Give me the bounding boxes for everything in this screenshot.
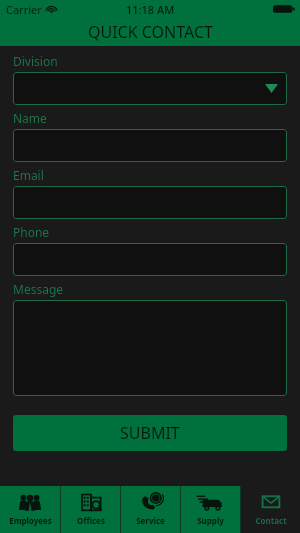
staticText: Division xyxy=(13,53,58,69)
button[interactable] xyxy=(13,186,287,219)
button[interactable]: Offices xyxy=(61,486,120,533)
staticText: Supply xyxy=(197,515,224,526)
staticText: Phone xyxy=(13,224,50,240)
staticText: Name xyxy=(13,110,47,126)
staticText: Contact xyxy=(255,515,287,526)
button[interactable] xyxy=(13,129,287,162)
staticText: SUBMIT xyxy=(120,422,180,444)
button[interactable] xyxy=(13,243,287,276)
staticText: Email xyxy=(13,167,44,183)
button[interactable]: SUBMIT xyxy=(13,415,287,451)
staticText: Service xyxy=(136,515,165,526)
staticText: 11:18 AM xyxy=(126,2,175,17)
staticText: Employees xyxy=(9,515,52,526)
button[interactable]: Contact xyxy=(241,486,300,533)
button[interactable]: Select division xyxy=(13,72,287,105)
staticText: Carrier xyxy=(6,2,42,17)
button[interactable] xyxy=(13,300,287,396)
staticText: QUICK CONTACT xyxy=(88,21,213,43)
staticText: Offices xyxy=(77,515,105,526)
button[interactable]: Service xyxy=(121,486,180,533)
button[interactable]: Employees xyxy=(0,486,60,533)
button[interactable]: Supply xyxy=(181,486,240,533)
staticText: Message xyxy=(13,281,64,297)
